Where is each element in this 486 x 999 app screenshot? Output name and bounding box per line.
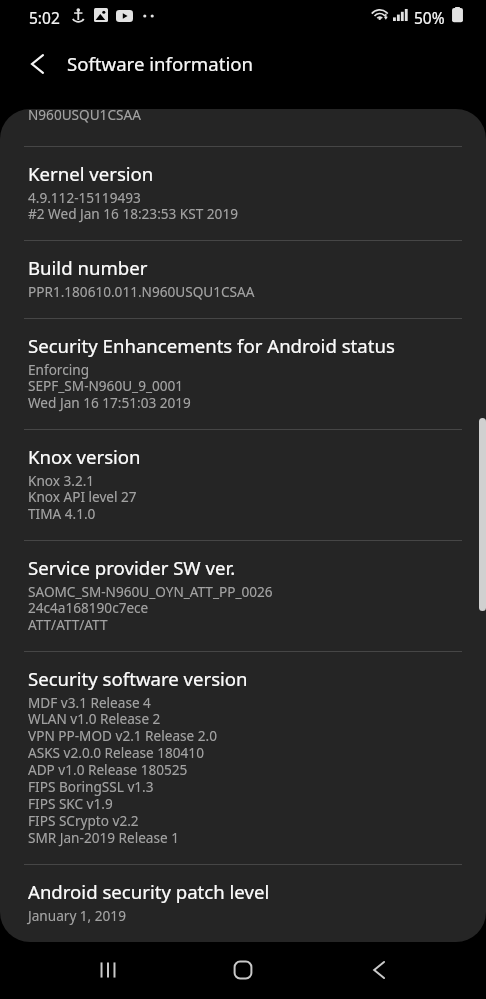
staticText: Service provider SW ver. [28,555,236,580]
staticText: 4.9.112-15119493 #2 Wed Jan 16 18:23:53 … [28,188,238,223]
staticText: Android security patch level [28,879,270,904]
staticText: MDF v3.1 Release 4 WLAN v1.0 Release 2 V… [28,693,217,847]
button[interactable]: Service provider SW ver. [0,540,486,651]
staticText: PPR1.180610.011.N960USQU1CSAA [28,282,255,301]
staticText: N960USQU1CSAA [28,109,141,124]
button[interactable]: Home [213,946,273,994]
staticText: 5:02 [29,7,60,28]
staticText: SAOMC_SM-N960U_OYN_ATT_PP_0026 24c4a1681… [28,582,273,634]
button[interactable]: Android security patch level [0,864,486,938]
staticText: Enforcing SEPF_SM-N960U_9_0001 Wed Jan 1… [28,360,191,412]
staticText: Knox 3.2.1 Knox API level 27 TIMA 4.1.0 [28,471,137,523]
button[interactable]: Recent apps [78,946,138,994]
staticText: Software information [67,51,253,76]
button[interactable]: Back [349,946,409,994]
button[interactable]: Security software version [0,651,486,864]
button[interactable]: Security Enhancements for Android status [0,318,486,429]
staticText: 50% [414,7,445,28]
staticText: Security software version [28,666,248,691]
staticText: Security Enhancements for Android status [28,333,395,358]
staticText: January 1, 2019 [28,906,126,925]
button[interactable]: Knox version [0,429,486,540]
staticText: Knox version [28,444,141,469]
button[interactable]: Build number [0,240,486,318]
staticText: Build number [28,255,148,280]
button[interactable]: Navigate up [9,36,65,92]
button[interactable]: Kernel version [0,146,486,240]
staticText: Kernel version [28,161,154,186]
